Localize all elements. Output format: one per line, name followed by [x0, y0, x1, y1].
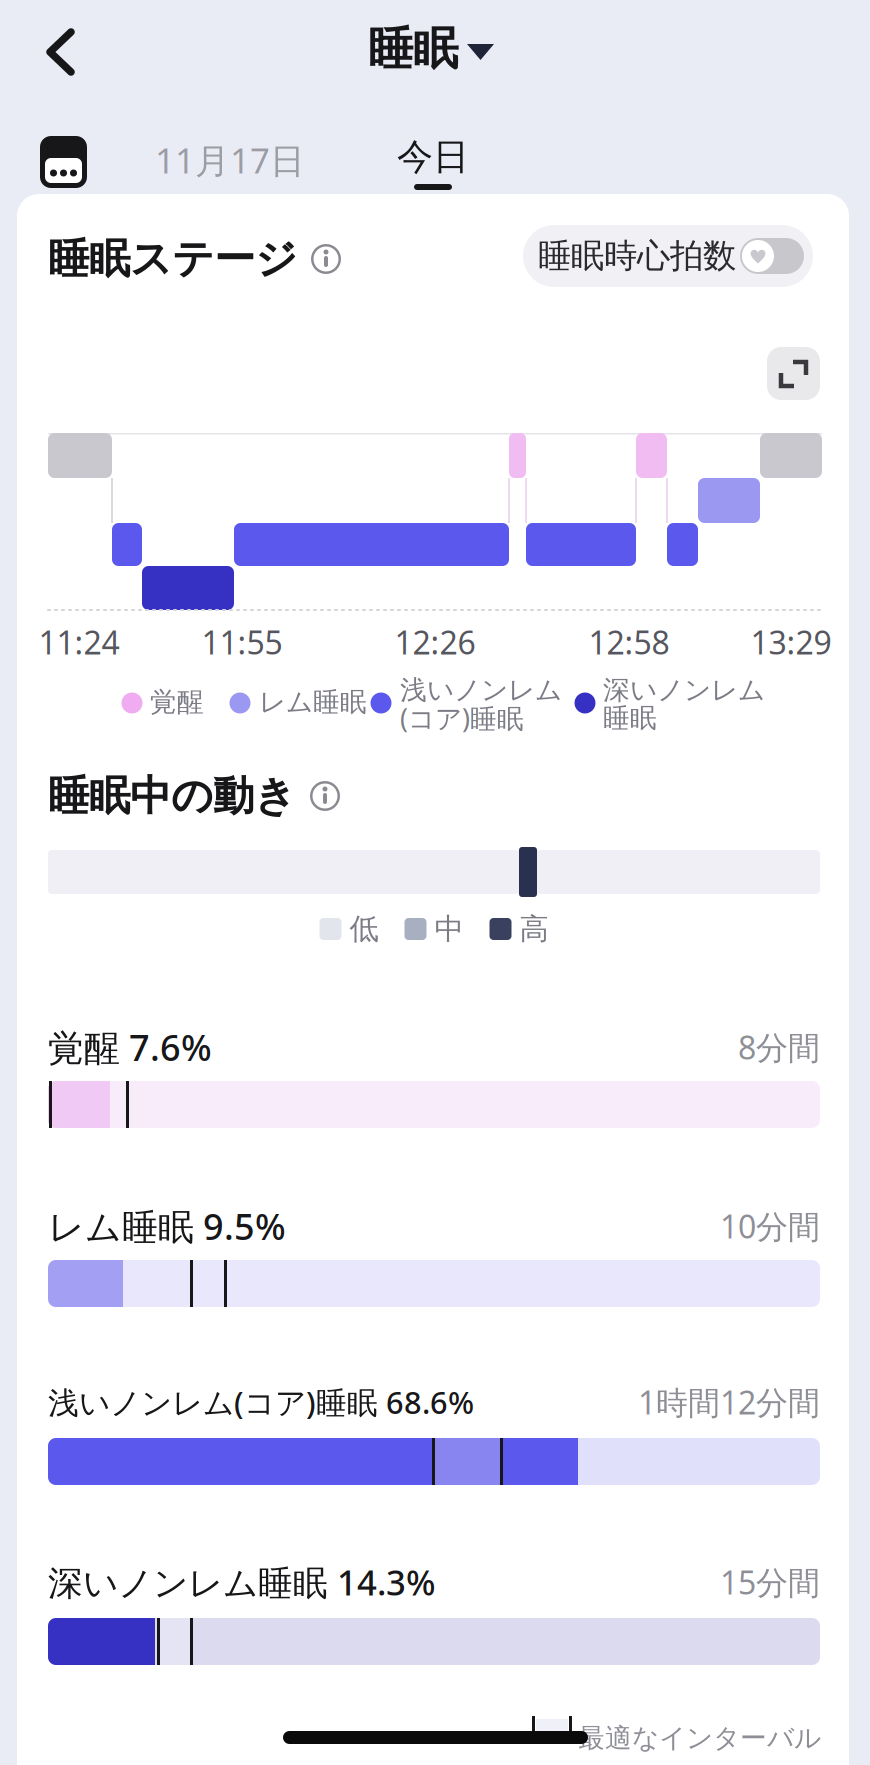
staticText: 12:58	[588, 621, 669, 663]
staticText: 15分間	[720, 1561, 820, 1603]
staticText: 覚醒 7.6%	[48, 1023, 212, 1071]
staticText: (コア)睡眠	[400, 700, 524, 736]
staticText: 8分間	[738, 1026, 820, 1068]
button[interactable]: 詳細情報	[310, 781, 340, 811]
button[interactable]: 11月17日	[130, 134, 330, 186]
staticText: 低	[349, 911, 378, 947]
staticText: 11:24	[38, 621, 119, 663]
staticText: 深いノンレム	[603, 674, 765, 706]
button[interactable]: 今日	[383, 130, 483, 192]
staticText: 睡眠時心拍数	[538, 235, 736, 276]
button[interactable]: 睡眠メニュー	[368, 24, 494, 74]
staticText: 11月17日	[155, 137, 305, 183]
button[interactable]: 戻る	[36, 19, 86, 85]
staticText: 高	[519, 911, 548, 947]
button[interactable]: 詳細情報	[311, 244, 341, 274]
staticText: 最適なインターバル	[578, 1722, 821, 1754]
button[interactable]: カレンダー	[40, 136, 87, 188]
staticText: 深いノンレム睡眠 14.3%	[48, 1559, 436, 1605]
staticText: 12:26	[394, 621, 475, 663]
staticText: 10分間	[720, 1205, 820, 1247]
staticText: 睡眠ステージ	[48, 234, 297, 284]
staticText: 13:29	[750, 621, 831, 663]
staticText: 今日	[397, 135, 469, 179]
staticText: 11:55	[201, 621, 282, 663]
staticText: 覚醒	[150, 686, 204, 718]
staticText: 浅いノンレム(コア)睡眠 68.6%	[48, 1382, 474, 1422]
staticText: 中	[434, 911, 463, 947]
staticText: レム睡眠	[259, 686, 367, 718]
staticText: レム睡眠 9.5%	[48, 1202, 286, 1250]
staticText: 睡眠	[368, 21, 458, 77]
staticText: 浅いノンレム	[400, 674, 562, 706]
staticText: 睡眠	[603, 702, 657, 734]
staticText: 1時間12分間	[638, 1381, 820, 1423]
button[interactable]: 拡大	[767, 347, 820, 400]
staticText: 睡眠中の動き	[48, 771, 296, 821]
button[interactable]: 睡眠時心拍数	[523, 225, 813, 287]
